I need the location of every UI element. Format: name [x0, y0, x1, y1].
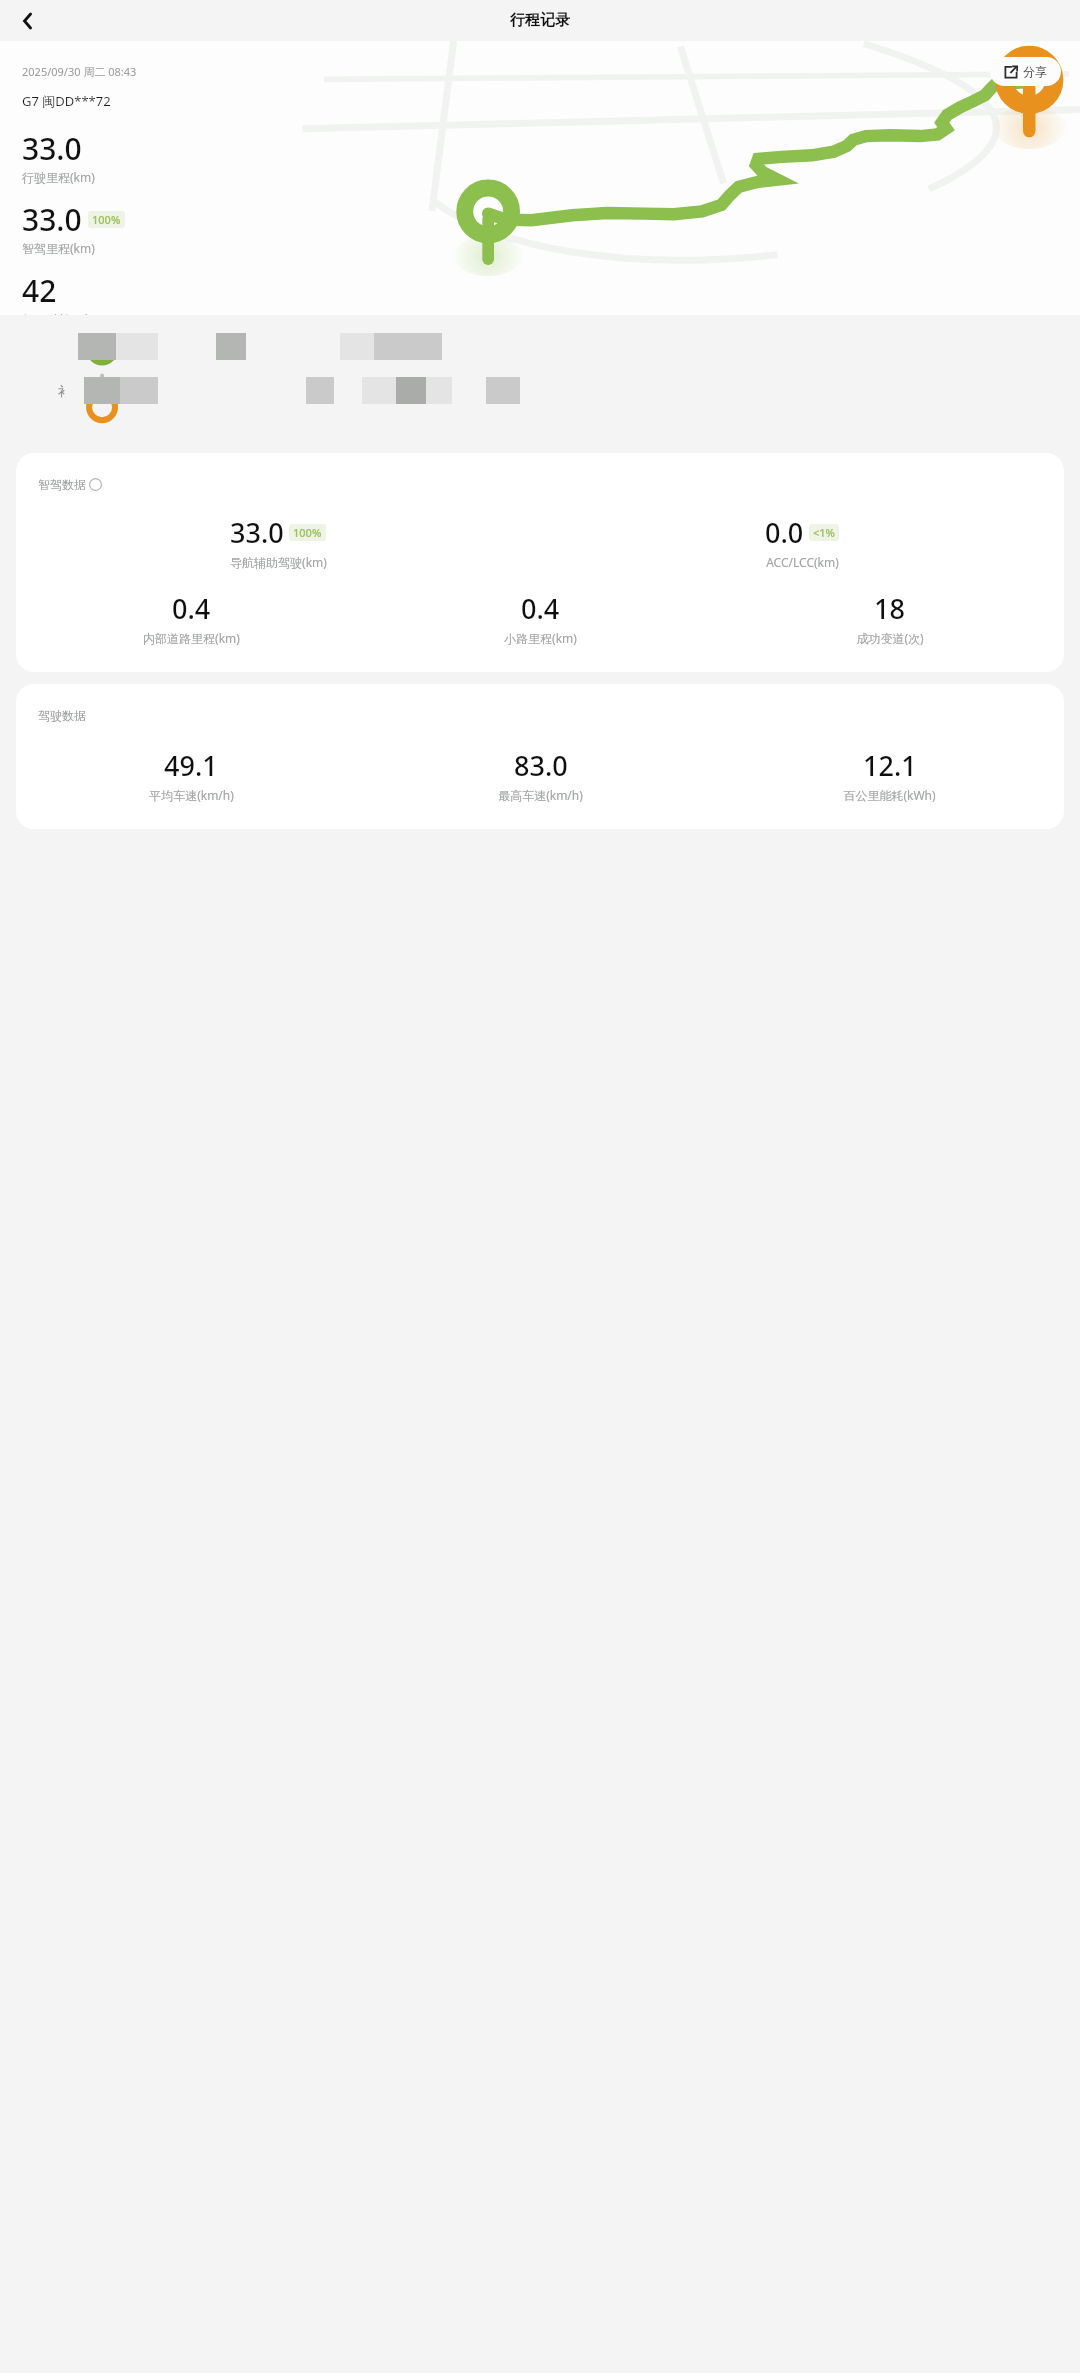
staticText: 行程记录: [510, 11, 570, 30]
staticText: G7 闽DD***72: [22, 92, 111, 110]
staticText: 100%: [92, 212, 121, 227]
staticText: 智驾数据: [38, 477, 86, 492]
staticText: 平均车速(km/h): [149, 787, 234, 803]
staticText: 100%: [293, 525, 322, 540]
staticText: 0.0: [765, 514, 804, 551]
staticText: 小路里程(km): [504, 630, 577, 646]
button[interactable]: 分享: [990, 57, 1061, 86]
staticText: 成功变道(次): [856, 630, 924, 646]
staticText: 33.0: [230, 514, 284, 551]
staticText: <1%: [813, 525, 835, 540]
button[interactable]: Back: [12, 5, 44, 37]
staticText: 2025/09/30 周二 08:43: [22, 64, 137, 79]
staticText: 18: [874, 590, 905, 627]
staticText: 智驾里程(km): [22, 240, 95, 256]
staticText: 12.1: [863, 747, 917, 784]
staticText: ACC/LCC(km): [766, 554, 839, 570]
staticText: 42: [22, 270, 57, 311]
staticText: 百公里能耗(kWh): [843, 787, 936, 803]
staticText: 分享: [1023, 64, 1047, 79]
staticText: 内部道路里程(km): [143, 630, 240, 646]
staticText: 驾驶数据: [38, 708, 86, 723]
staticText: 33.0: [22, 199, 82, 240]
staticText: 0.4: [172, 590, 211, 627]
staticText: 33.0: [22, 128, 82, 169]
staticText: 行程时长(min): [22, 311, 99, 315]
staticText: 导航辅助驾驶(km): [230, 554, 327, 570]
staticText: 83.0: [514, 747, 568, 784]
staticText: 最高车速(km/h): [498, 787, 583, 803]
staticText: 0.4: [521, 590, 560, 627]
staticText: 49.1: [164, 747, 218, 784]
staticText: 衤: [58, 383, 71, 399]
staticText: 行驶里程(km): [22, 169, 95, 185]
